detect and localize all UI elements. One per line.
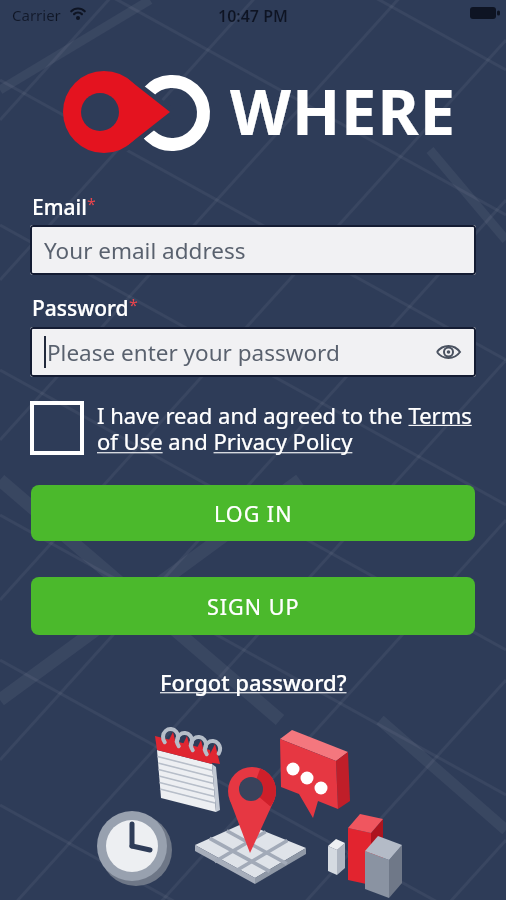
staticText: SIGN UP: [207, 592, 300, 621]
staticText: 10:47 PM: [218, 5, 288, 27]
button[interactable]: LOG IN: [31, 485, 475, 541]
button[interactable]: [437, 344, 460, 360]
button[interactable]: Your email address: [30, 225, 476, 275]
staticText: Email: [32, 193, 87, 222]
staticText: LOG IN: [214, 499, 293, 528]
staticText: *: [87, 193, 96, 215]
button[interactable]: I have read and agreed to the Terms of U…: [97, 400, 487, 457]
staticText: WHERE: [230, 68, 457, 154]
button[interactable]: [30, 401, 84, 455]
staticText: Forgot password?: [160, 667, 347, 697]
staticText: Please enter your password: [47, 337, 340, 368]
button[interactable]: Forgot password?: [155, 666, 351, 698]
staticText: *: [129, 294, 138, 316]
staticText: Your email address: [44, 235, 246, 266]
staticText: Carrier: [12, 5, 61, 25]
staticText: Password: [32, 294, 129, 323]
button[interactable]: SIGN UP: [31, 577, 475, 635]
button[interactable]: Please enter your password: [30, 327, 476, 377]
staticText: I have read and agreed to the Terms of U…: [97, 400, 472, 457]
